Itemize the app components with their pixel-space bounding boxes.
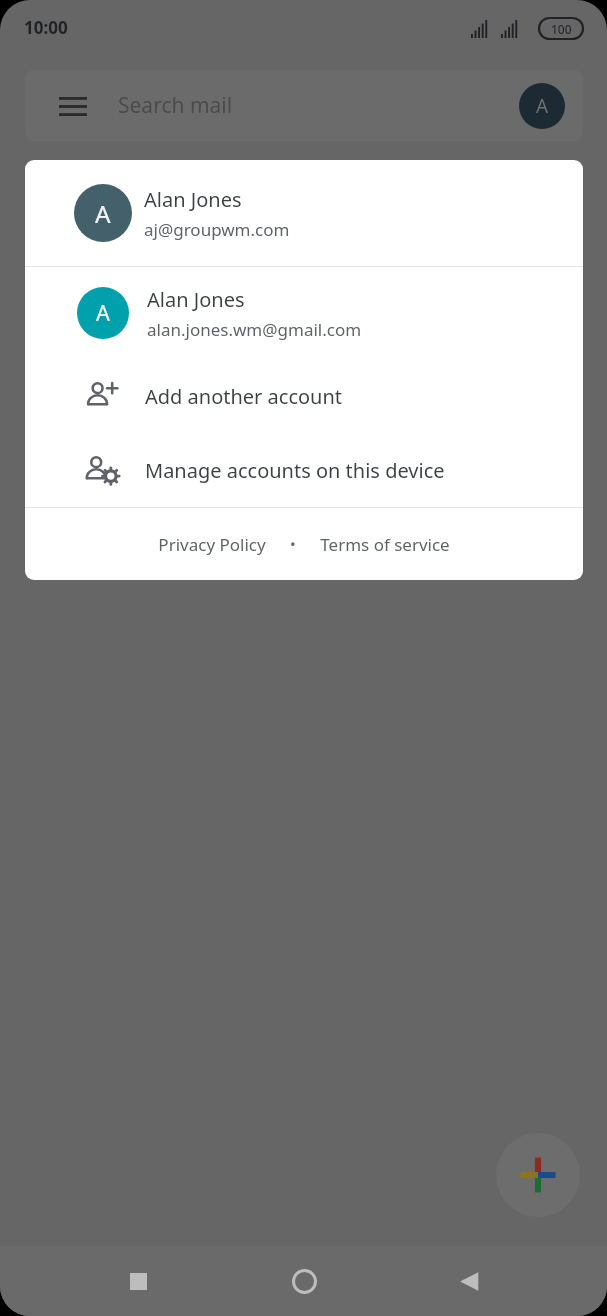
button[interactable]: A: [25, 267, 583, 359]
staticText: 100: [551, 21, 572, 37]
button[interactable]: Open navigation menu: [25, 70, 583, 141]
staticText: Alan Jones: [144, 186, 242, 213]
staticText: Terms of service: [320, 533, 450, 556]
button[interactable]: Recent apps: [111, 1254, 165, 1308]
button[interactable]: Terms of service: [316, 533, 454, 556]
button[interactable]: Open navigation menu: [53, 86, 93, 126]
button[interactable]: Back: [442, 1254, 496, 1308]
staticText: A: [95, 197, 111, 230]
staticText: A: [96, 298, 110, 328]
staticText: •: [290, 534, 296, 554]
staticText: 10:00: [24, 16, 68, 39]
button[interactable]: Account: [519, 83, 565, 129]
button[interactable]: Compose: [496, 1133, 580, 1217]
staticText: Manage accounts on this device: [145, 457, 445, 484]
staticText: alan.jones.wm@gmail.com: [147, 318, 362, 341]
staticText: Add another account: [145, 383, 343, 410]
staticText: Privacy Policy: [158, 533, 266, 556]
staticText: aj@groupwm.com: [144, 218, 290, 241]
button[interactable]: Home: [277, 1254, 331, 1308]
button[interactable]: Add another account: [25, 359, 583, 433]
staticText: Search mail: [118, 91, 233, 120]
button[interactable]: Manage accounts on this device: [25, 433, 583, 507]
staticText: Alan Jones: [147, 286, 245, 313]
button[interactable]: Privacy Policy: [154, 533, 270, 556]
staticText: A: [536, 93, 549, 119]
button[interactable]: A: [25, 160, 583, 266]
